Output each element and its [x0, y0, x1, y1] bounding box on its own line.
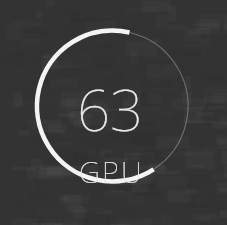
- button[interactable]: 63: [77, 69, 144, 148]
- button[interactable]: GPU usage 63 percent: [0, 0, 227, 225]
- button[interactable]: GPU: [79, 152, 144, 191]
